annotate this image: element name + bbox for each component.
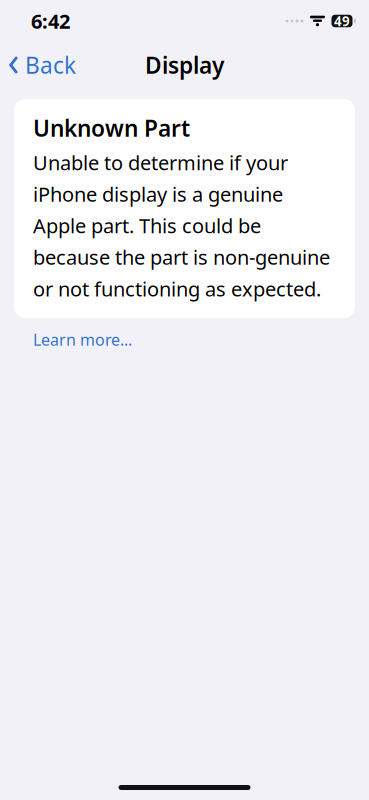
staticText: Unknown Part xyxy=(33,113,190,143)
button[interactable]: Learn more... xyxy=(14,318,146,358)
staticText: 6:42 xyxy=(31,8,70,34)
staticText: Unable to determine if your iPhone displ… xyxy=(33,149,330,302)
staticText: Display xyxy=(145,50,224,80)
staticText: Back xyxy=(25,50,76,80)
staticText: Learn more... xyxy=(33,329,132,350)
staticText: 49 xyxy=(334,12,350,30)
button[interactable]: Back xyxy=(0,43,88,87)
